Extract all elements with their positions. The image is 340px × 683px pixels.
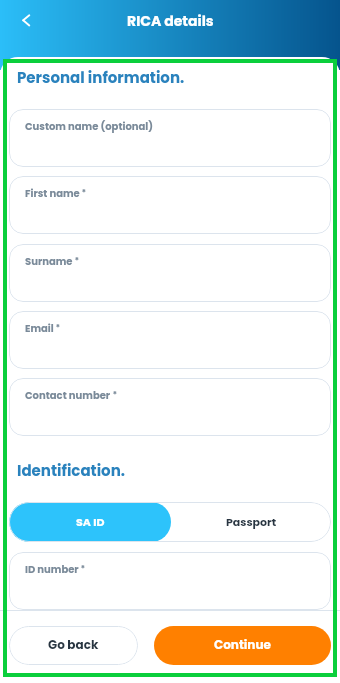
staticText: Contact number [25,388,111,402]
staticText: Passport [226,514,277,529]
staticText: RICA details [127,11,214,31]
staticText: * [111,390,117,401]
button[interactable]: Email [9,311,331,369]
button[interactable]: First name [9,176,331,234]
staticText: SA ID [76,514,105,529]
button[interactable]: Back [12,6,40,34]
button[interactable]: Contact number [9,378,331,436]
button[interactable]: ID number [9,552,331,610]
staticText: Identification. [17,460,125,481]
button[interactable]: Passport [171,502,331,542]
staticText: Continue [214,636,271,653]
staticText: Surname [25,254,73,268]
staticText: Go back [48,636,99,653]
button[interactable]: Custom name (optional) [9,109,331,167]
staticText: * [80,188,86,199]
staticText: Personal information. [17,67,185,88]
staticText: * [54,323,60,334]
button[interactable]: Go back [9,626,138,665]
staticText: First name [25,186,80,200]
button[interactable]: SA ID [9,502,171,542]
button[interactable]: Surname [9,244,331,302]
button[interactable]: Continue [154,626,331,665]
staticText: * [73,256,79,267]
staticText: Custom name (optional) [25,119,154,133]
staticText: ID number [25,562,79,576]
staticText: * [79,564,85,575]
staticText: Email [25,321,54,335]
